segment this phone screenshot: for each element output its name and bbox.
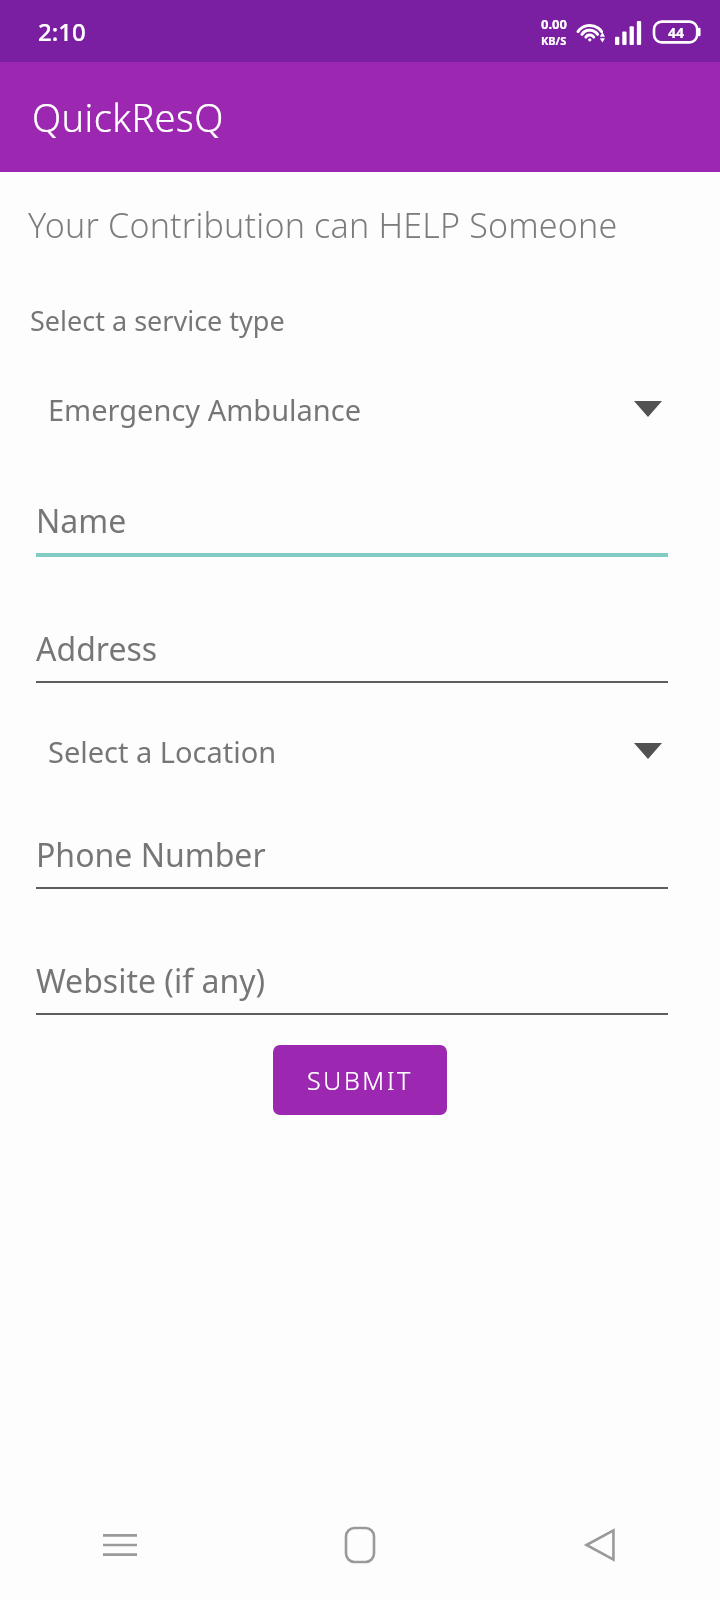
staticText: 0.00 bbox=[541, 15, 567, 33]
button[interactable]: Phone Number bbox=[0, 833, 720, 889]
button[interactable]: Name bbox=[0, 499, 720, 557]
staticText: Phone Number bbox=[36, 833, 266, 877]
staticText: Your Contribution can HELP Someone bbox=[28, 202, 706, 248]
button[interactable]: Home bbox=[240, 1505, 480, 1585]
button[interactable]: Recent apps bbox=[0, 1505, 240, 1585]
button[interactable]: Emergency Ambulance bbox=[0, 381, 720, 437]
button[interactable]: Website (if any) bbox=[0, 959, 720, 1015]
button[interactable]: Address bbox=[0, 627, 720, 683]
staticText: Select a Location bbox=[48, 732, 277, 771]
button[interactable]: Select a Location bbox=[0, 723, 720, 779]
button[interactable]: Back bbox=[480, 1505, 720, 1585]
staticText: Emergency Ambulance bbox=[48, 390, 361, 429]
button[interactable]: SUBMIT bbox=[273, 1045, 447, 1115]
staticText: 2:10 bbox=[38, 15, 86, 48]
staticText: Name bbox=[36, 499, 127, 543]
staticText: Address bbox=[36, 627, 158, 671]
staticText: Website (if any) bbox=[36, 959, 266, 1003]
staticText: QuickResQ bbox=[32, 91, 224, 143]
staticText: KB/S bbox=[541, 33, 567, 48]
staticText: 44 bbox=[668, 23, 685, 42]
staticText: SUBMIT bbox=[307, 1063, 413, 1097]
staticText: Select a service type bbox=[30, 302, 285, 339]
